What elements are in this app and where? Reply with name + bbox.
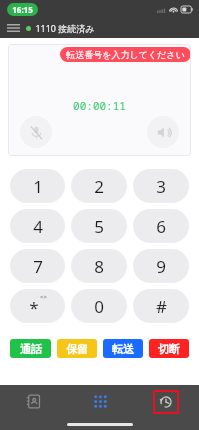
staticText: 00:00:11 [73, 98, 126, 113]
button[interactable]: # [133, 289, 189, 323]
button[interactable]: Dialpad [67, 385, 133, 418]
button[interactable]: Contacts [0, 385, 67, 418]
button[interactable]: 通話 [10, 339, 51, 358]
button[interactable]: 5 [71, 209, 127, 243]
staticText: * [29, 296, 39, 319]
staticText: <> [40, 293, 47, 301]
staticText: 16:15 [12, 4, 33, 15]
button[interactable]: 1 [10, 169, 65, 203]
staticText: 8 [94, 255, 104, 278]
staticText: 6 [156, 215, 166, 238]
staticText: 1 [33, 175, 43, 198]
button[interactable]: 転送番号を入力してください [60, 47, 191, 62]
staticText: 転送番号を入力してください [66, 49, 185, 60]
button[interactable]: History [133, 385, 199, 418]
button[interactable]: 8 [71, 249, 127, 283]
button[interactable]: 0 [71, 289, 127, 323]
button[interactable]: 2 [71, 169, 127, 203]
staticText: 通話 [20, 342, 42, 356]
staticText: 4 [33, 215, 43, 238]
staticText: 5 [94, 215, 104, 238]
button[interactable]: 9 [133, 249, 189, 283]
button[interactable]: * [10, 289, 65, 323]
button[interactable]: 3 [133, 169, 189, 203]
button[interactable]: Speaker [147, 116, 179, 148]
button[interactable]: Menu [0, 20, 26, 36]
button[interactable]: 転送 [103, 339, 143, 358]
staticText: 切断 [158, 342, 180, 356]
button[interactable]: Mute [20, 116, 52, 148]
staticText: 3 [156, 175, 166, 198]
staticText: 7 [33, 255, 43, 278]
staticText: 0 [94, 295, 104, 318]
staticText: 保留 [66, 342, 88, 356]
button[interactable]: 切断 [149, 339, 189, 358]
button[interactable]: 保留 [57, 339, 97, 358]
staticText: # [156, 295, 167, 318]
button[interactable]: 7 [10, 249, 65, 283]
staticText: 1110 接続済み [35, 22, 95, 34]
button[interactable]: 4 [10, 209, 65, 243]
staticText: 2 [94, 175, 104, 198]
button[interactable]: 6 [133, 209, 189, 243]
staticText: 転送 [112, 342, 134, 356]
staticText: 9 [156, 255, 166, 278]
